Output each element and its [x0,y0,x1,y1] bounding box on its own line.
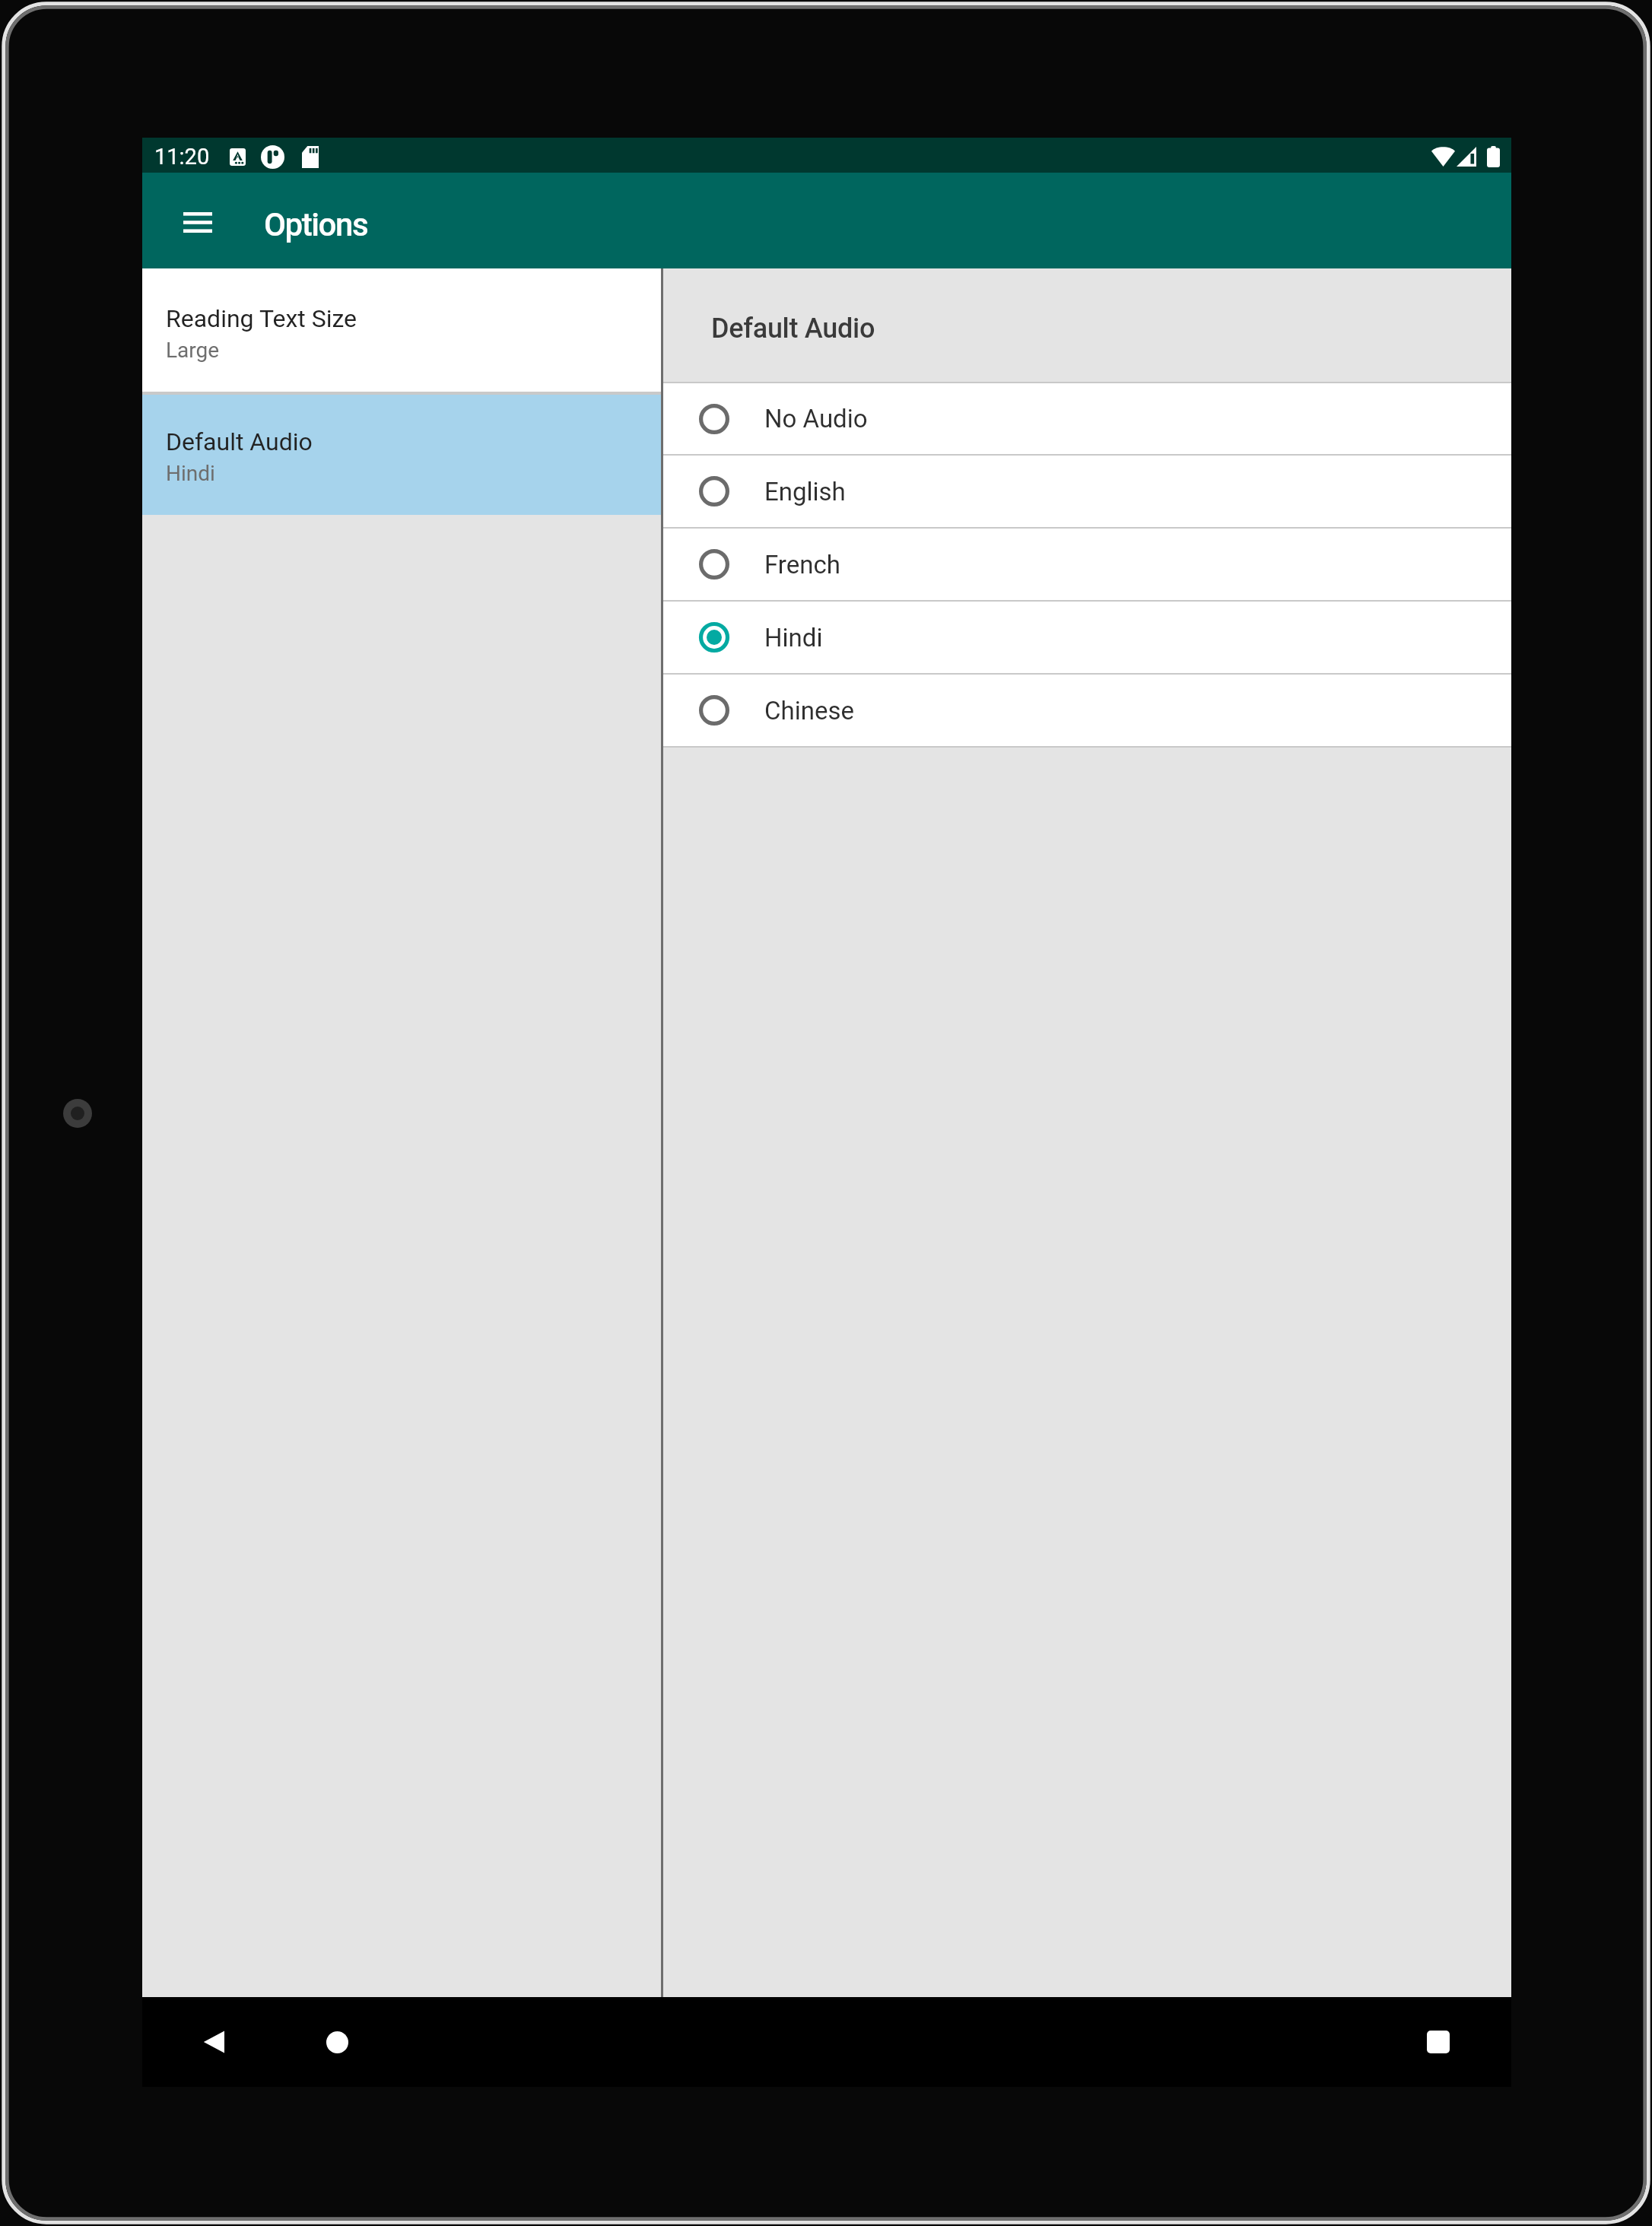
button[interactable]: Hindi [663,602,1511,673]
staticText: Default Audio [711,312,875,344]
button[interactable]: English [663,456,1511,527]
button[interactable]: Back [183,1997,244,2087]
button[interactable]: Home [307,1997,367,2087]
staticText: 11:20 [154,144,210,170]
staticText: No Audio [764,404,868,433]
button[interactable]: No Audio [663,383,1511,454]
button[interactable]: Recent apps [1408,1997,1469,2087]
staticText: Reading Text Size [166,304,357,333]
button[interactable]: French [663,529,1511,600]
staticText: French [764,550,840,580]
staticText: Options [264,206,368,244]
button[interactable]: Chinese [663,675,1511,746]
staticText: Hindi [166,461,215,486]
button[interactable]: Reading Text Size [142,268,661,392]
button[interactable]: Open navigation menu [160,174,236,270]
staticText: Default Audio [166,427,313,456]
staticText: Hindi [764,623,823,653]
staticText: English [764,477,846,506]
staticText: Large [166,338,220,363]
button[interactable]: Default Audio [142,395,661,515]
staticText: Chinese [764,696,854,726]
